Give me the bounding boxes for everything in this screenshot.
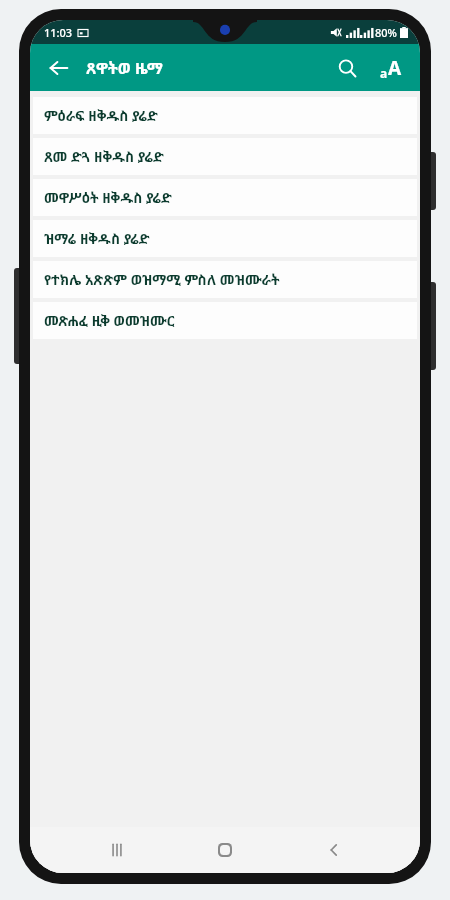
button[interactable]: መዋሥዕት ዘቅዱስ ያሬድ bbox=[33, 179, 417, 216]
staticText: የተክሌ አጽጽም ወዝማሚ ምስለ መዝሙራት bbox=[44, 270, 280, 289]
button[interactable]: Back bbox=[38, 47, 80, 89]
button[interactable]: Text size bbox=[370, 47, 412, 89]
staticText: መዋሥዕት ዘቅዱስ ያሬድ bbox=[44, 188, 172, 207]
button[interactable]: መጽሐፈ ዚቅ ወመዝሙር bbox=[33, 302, 417, 339]
button[interactable]: ምዕራፍ ዘቅዱስ ያሬድ bbox=[33, 97, 417, 134]
staticText: a bbox=[380, 65, 388, 81]
button[interactable]: Back bbox=[312, 828, 356, 872]
button[interactable]: የተክሌ አጽጽም ወዝማሚ ምስለ መዝሙራት bbox=[33, 261, 417, 298]
staticText: 80% bbox=[375, 25, 397, 40]
staticText: ጸዋትወ ዜማ bbox=[86, 57, 163, 79]
staticText: 11:03 bbox=[44, 25, 73, 40]
staticText: ዝማሬ ዘቅዱስ ያሬድ bbox=[44, 229, 150, 248]
button[interactable]: Recent apps bbox=[95, 828, 139, 872]
staticText: ምዕራፍ ዘቅዱስ ያሬድ bbox=[44, 106, 158, 125]
button[interactable]: Search bbox=[326, 47, 368, 89]
staticText: መጽሐፈ ዚቅ ወመዝሙር bbox=[44, 311, 175, 330]
button[interactable]: ጸመ ድጓ ዘቅዱስ ያሬድ bbox=[33, 138, 417, 175]
button[interactable]: ዝማሬ ዘቅዱስ ያሬድ bbox=[33, 220, 417, 257]
button[interactable]: Home bbox=[203, 828, 247, 872]
staticText: A bbox=[388, 55, 402, 81]
staticText: ጸመ ድጓ ዘቅዱስ ያሬድ bbox=[44, 147, 164, 166]
